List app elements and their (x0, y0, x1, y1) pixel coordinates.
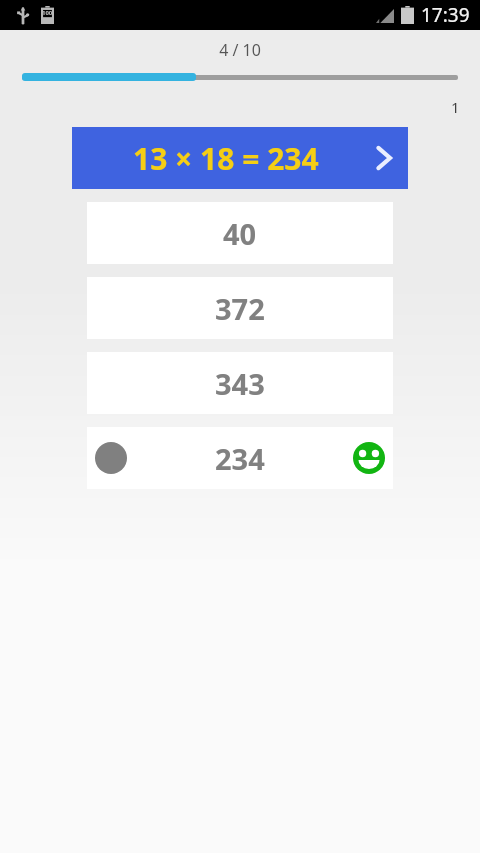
other: Correct answer (353, 442, 385, 474)
staticText: 234 (215, 439, 265, 478)
staticText: 100 (42, 9, 53, 17)
staticText: 40 (223, 214, 257, 253)
button[interactable]: 13 × 18 = 234 (72, 127, 408, 189)
staticText: 17:39 (421, 2, 470, 28)
staticText: 13 × 18 = 234 (133, 138, 319, 179)
staticText: 4 / 10 (0, 39, 480, 61)
staticText: 1 (451, 97, 460, 117)
button[interactable]: 372 (87, 277, 393, 339)
button[interactable]: 40 (87, 202, 393, 264)
staticText: 343 (215, 364, 265, 403)
button[interactable]: 343 (87, 352, 393, 414)
button[interactable]: 234 (87, 427, 393, 489)
staticText: 372 (215, 289, 265, 328)
